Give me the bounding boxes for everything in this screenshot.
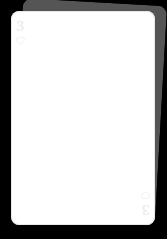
- button[interactable]: Card underneath in the stack: [11, 0, 167, 226]
- staticText: 3: [141, 201, 150, 221]
- button[interactable]: Three of hearts: [11, 11, 155, 225]
- staticText: 3: [16, 15, 25, 35]
